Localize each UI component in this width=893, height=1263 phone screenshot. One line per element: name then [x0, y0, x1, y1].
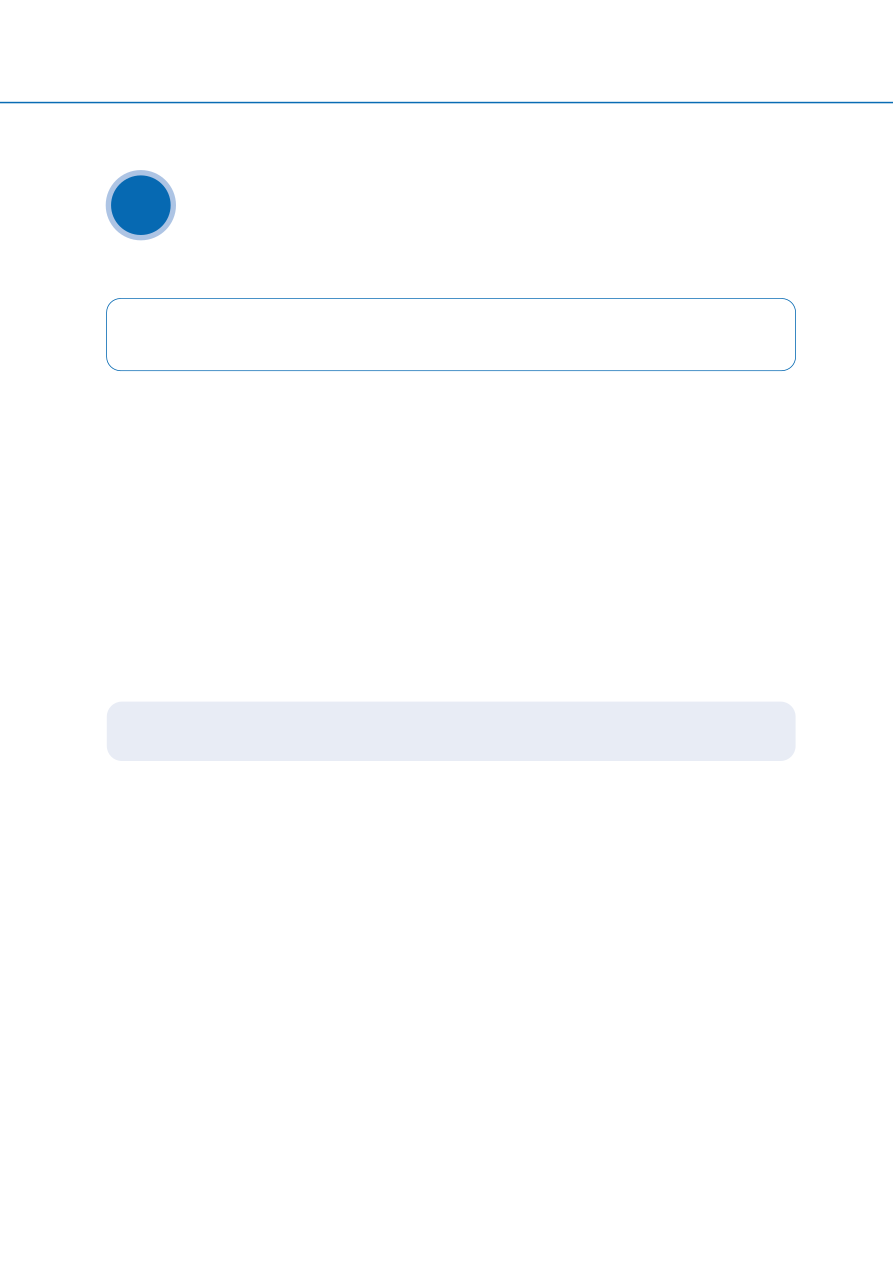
button[interactable]: Profile: [106, 170, 176, 241]
button[interactable]: Entry field: [107, 298, 796, 371]
